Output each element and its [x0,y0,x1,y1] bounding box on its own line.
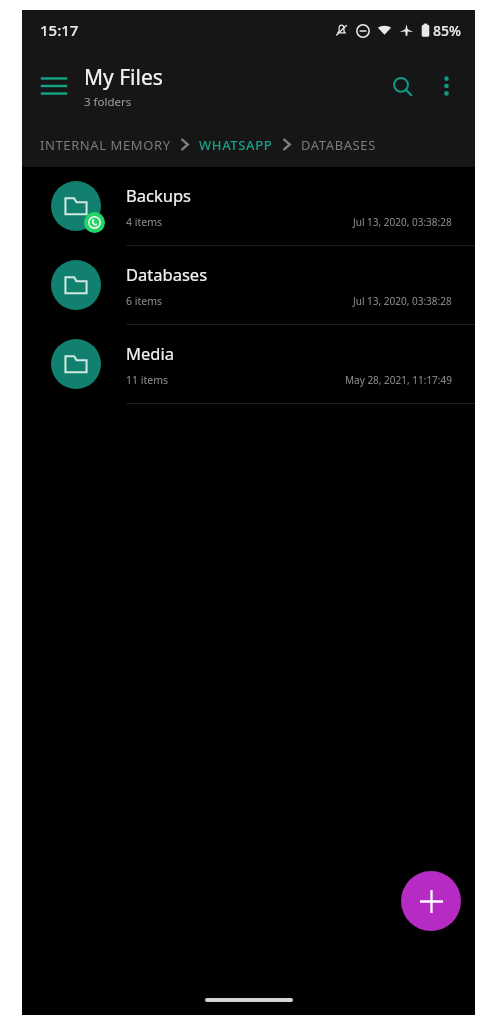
staticText: 6 items [126,294,163,308]
button[interactable]: Add [401,871,461,931]
staticText: Media [126,342,174,364]
button[interactable]: Databases [22,246,475,324]
staticText: Databases [126,263,208,285]
staticText: WHATSAPP [199,136,273,154]
staticText: INTERNAL MEMORY [40,136,171,154]
button[interactable]: DATABASES [301,136,376,154]
button[interactable]: More options [425,65,467,107]
button[interactable]: Media [22,325,475,403]
staticText: Jul 13, 2020, 03:38:28 [353,215,452,229]
staticText: 4 items [126,215,163,229]
staticText: DATABASES [301,136,376,154]
button[interactable]: INTERNAL MEMORY [40,136,171,154]
staticText: 85% [433,21,461,40]
staticText: 11 items [126,373,169,387]
staticText: May 28, 2021, 11:17:49 [345,373,452,387]
staticText: 15:17 [40,20,79,40]
button[interactable]: Search [379,63,425,109]
staticText: Jul 13, 2020, 03:38:28 [353,294,452,308]
staticText: My Files [84,63,163,92]
staticText: 3 folders [84,94,132,110]
button[interactable]: WHATSAPP [199,136,273,154]
staticText: Backups [126,184,191,206]
button[interactable]: Open navigation drawer [32,64,76,108]
button[interactable]: Backups [22,167,475,245]
